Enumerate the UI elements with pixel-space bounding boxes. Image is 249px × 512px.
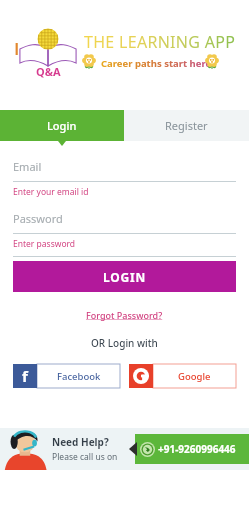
staticText: Register bbox=[165, 118, 208, 133]
button[interactable]: Call +91-9260996446 bbox=[135, 434, 249, 464]
staticText: f bbox=[22, 366, 28, 386]
button[interactable]: Login bbox=[0, 110, 124, 141]
staticText: Forgot Password? bbox=[86, 309, 163, 321]
staticText: OR Login with bbox=[91, 336, 158, 350]
staticText: Enter your email id bbox=[13, 186, 89, 198]
staticText: Email bbox=[13, 159, 42, 174]
staticText: LOGIN bbox=[103, 269, 147, 285]
staticText: +91-9260996446 bbox=[158, 442, 236, 456]
button[interactable]: LOGIN bbox=[13, 261, 236, 292]
staticText: THE LEARNING APP bbox=[84, 31, 236, 53]
staticText: Q&A bbox=[36, 64, 61, 79]
button[interactable]: Google bbox=[129, 364, 236, 388]
staticText: Please call us on bbox=[52, 451, 118, 463]
button[interactable]: Forgot Password? bbox=[82, 307, 167, 323]
staticText: Google bbox=[178, 370, 211, 383]
staticText: Password bbox=[13, 211, 63, 226]
staticText: Need Help? bbox=[52, 435, 109, 449]
staticText: Facebook bbox=[57, 370, 101, 383]
staticText: Career paths start here bbox=[101, 57, 212, 70]
button[interactable]: f bbox=[13, 364, 120, 388]
staticText: Login bbox=[47, 118, 77, 133]
button[interactable]: Register bbox=[124, 110, 249, 141]
staticText: Enter password bbox=[13, 238, 76, 250]
